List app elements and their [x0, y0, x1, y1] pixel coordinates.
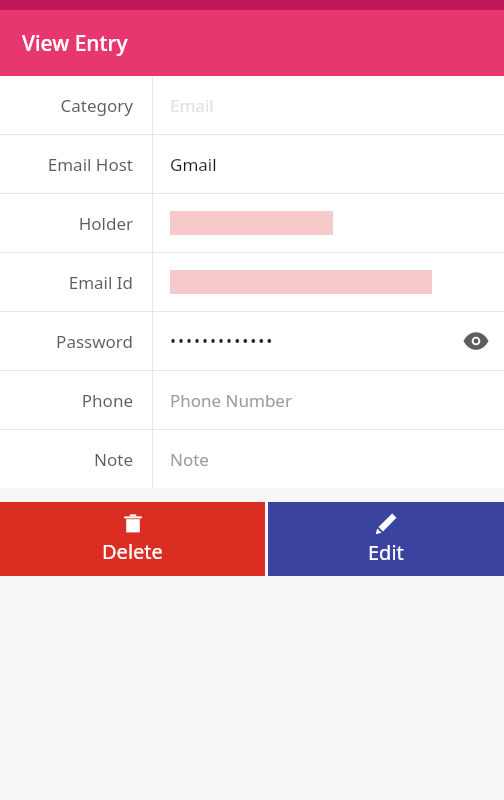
button[interactable]: Edit [268, 502, 504, 576]
staticText: Email Id [68, 271, 133, 294]
staticText: Phone [81, 389, 133, 412]
staticText: Note [170, 448, 209, 471]
staticText: Holder [78, 212, 133, 235]
staticText: Edit [368, 539, 404, 566]
staticText: Phone Number [170, 389, 292, 412]
button[interactable]: Holder [0, 194, 504, 252]
button[interactable]: Note [0, 430, 504, 488]
staticText: View Entry [22, 29, 128, 58]
button[interactable]: Delete [0, 502, 265, 576]
button[interactable]: Show password [454, 319, 498, 363]
staticText: Email [170, 94, 214, 117]
button[interactable]: Phone [0, 371, 504, 429]
staticText: Category [60, 94, 133, 117]
button[interactable]: Password [0, 312, 504, 370]
staticText: Gmail [170, 153, 217, 176]
button[interactable]: Email Host [0, 135, 504, 193]
staticText: Email Host [47, 153, 133, 176]
staticText: ••••••••••••• [170, 330, 275, 352]
staticText: Delete [102, 538, 163, 565]
staticText: Note [94, 448, 133, 471]
staticText: Password [56, 330, 133, 353]
button[interactable]: Email Id [0, 253, 504, 311]
button[interactable]: Category [0, 76, 504, 134]
